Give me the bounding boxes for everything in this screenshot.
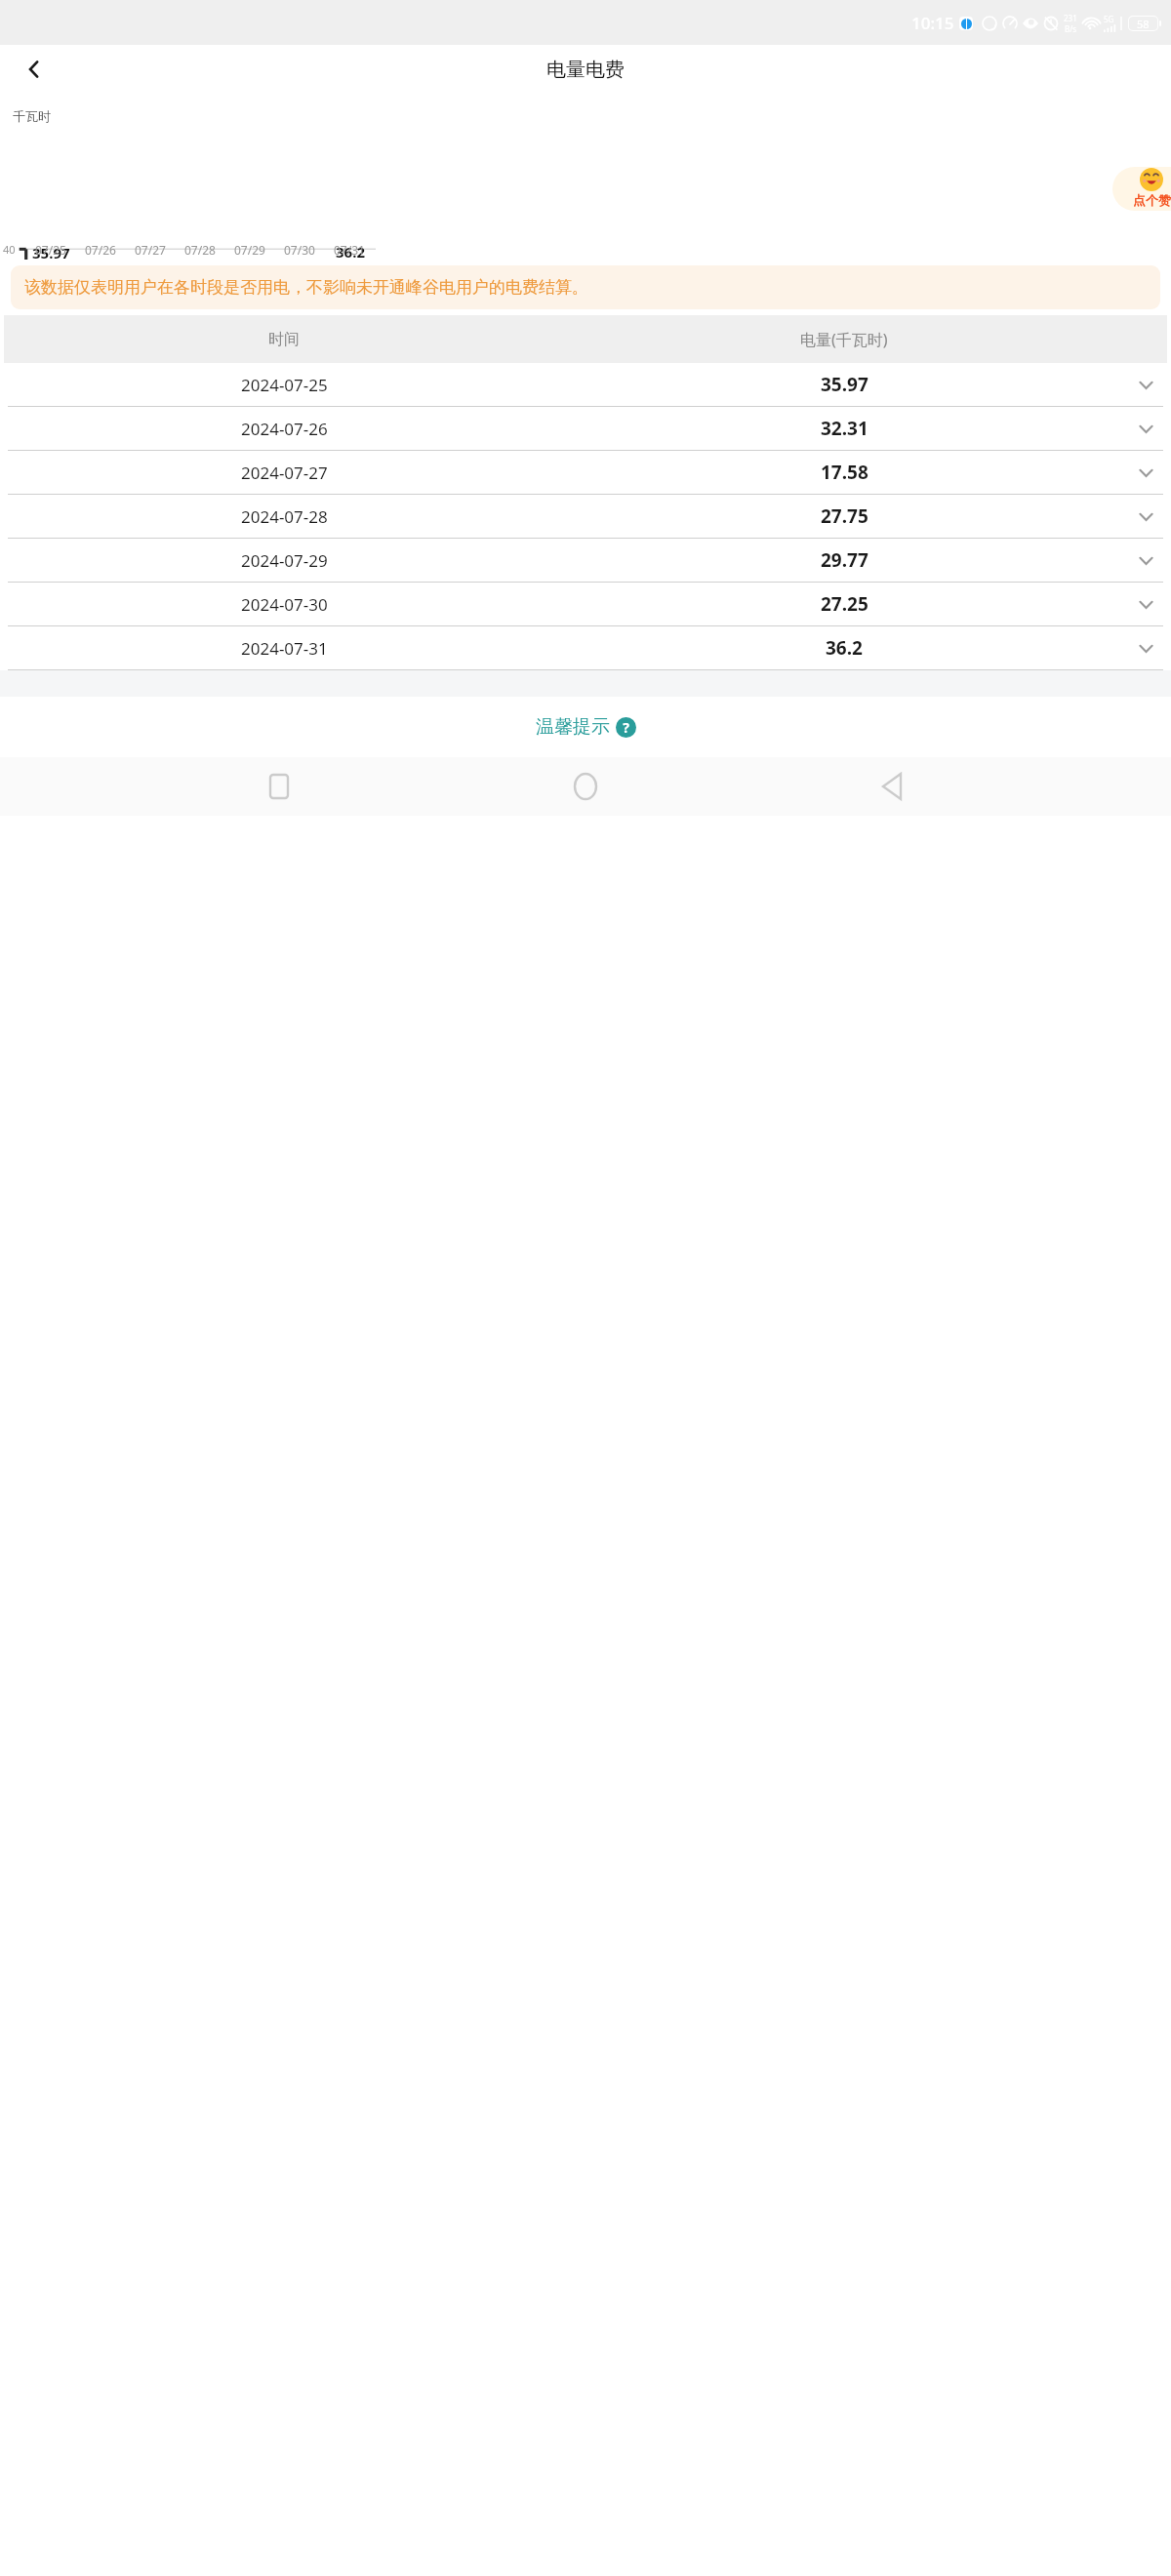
button[interactable]: 2024-07-26: [4, 407, 1167, 450]
button[interactable]: 温馨提示: [524, 709, 648, 745]
button[interactable]: Back: [865, 759, 919, 814]
staticText: 5G: [1104, 14, 1114, 24]
button[interactable]: Recents: [252, 759, 306, 814]
staticText: 2024-07-28: [241, 505, 328, 528]
button[interactable]: Like: [1112, 167, 1171, 211]
staticText: 231: [1064, 13, 1077, 23]
button[interactable]: 2024-07-25: [4, 363, 1167, 406]
staticText: 36.2: [336, 242, 365, 262]
staticText: 17.58: [821, 460, 868, 485]
staticText: B/s: [1065, 23, 1077, 34]
staticText: 32.31: [82, 260, 120, 279]
staticText: 10:15: [911, 12, 954, 34]
staticText: 27.75: [182, 279, 221, 299]
staticText: 2024-07-31: [241, 637, 328, 660]
staticText: 千瓦时: [13, 108, 51, 124]
staticText: 29.77: [232, 270, 270, 290]
staticText: 07/27: [135, 242, 166, 258]
button[interactable]: 2024-07-31: [4, 626, 1167, 669]
staticText: 电量电费: [546, 58, 625, 82]
staticText: 30: [3, 286, 16, 301]
staticText: ?: [623, 718, 629, 737]
staticText: 2024-07-26: [241, 418, 328, 440]
staticText: 2024-07-25: [241, 374, 328, 396]
button[interactable]: Back: [14, 49, 55, 90]
staticText: 58: [1137, 17, 1150, 31]
staticText: 07/30: [284, 242, 315, 258]
button[interactable]: 2024-07-30: [4, 583, 1167, 625]
staticText: 36.2: [826, 635, 863, 661]
staticText: 时间: [268, 330, 300, 349]
staticText: 27.75: [821, 503, 868, 529]
staticText: 2024-07-30: [241, 593, 328, 616]
staticText: 29.77: [821, 547, 868, 573]
staticText: 07/28: [184, 242, 216, 258]
staticText: 该数据仅表明用户在各时段是否用电，不影响未开通峰谷电用户的电费结算。: [24, 277, 588, 298]
staticText: 07/25: [35, 242, 66, 258]
staticText: 点个赞: [1133, 192, 1171, 208]
button[interactable]: 2024-07-29: [4, 539, 1167, 582]
button[interactable]: Home: [558, 759, 613, 814]
staticText: 20: [3, 330, 16, 344]
staticText: 40: [3, 242, 16, 257]
staticText: 温馨提示: [536, 715, 610, 739]
button[interactable]: 2024-07-27: [4, 451, 1167, 494]
staticText: 2024-07-29: [241, 549, 328, 572]
staticText: 35.97: [32, 243, 70, 262]
staticText: 35.97: [821, 372, 868, 397]
staticText: 27.25: [282, 282, 320, 302]
staticText: 电量(千瓦时): [800, 329, 888, 350]
staticText: 07/26: [85, 242, 116, 258]
staticText: 2024-07-27: [241, 462, 328, 484]
staticText: 32.31: [821, 416, 868, 441]
staticText: 07/29: [234, 242, 265, 258]
button[interactable]: 2024-07-28: [4, 495, 1167, 538]
staticText: 07/31: [334, 242, 365, 258]
staticText: 27.25: [821, 591, 868, 617]
